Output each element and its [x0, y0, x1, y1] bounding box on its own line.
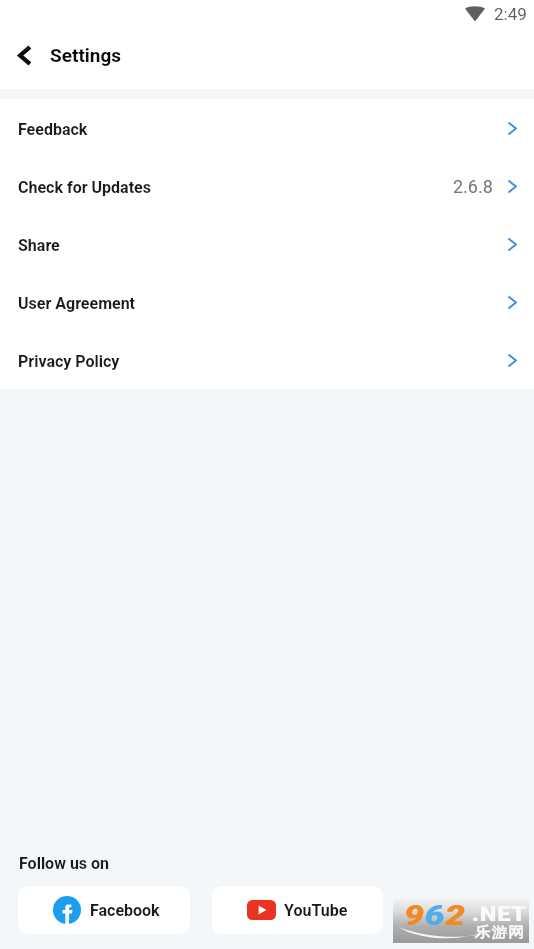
staticText: Facebook	[90, 901, 160, 920]
staticText: YouTube	[284, 901, 348, 920]
staticText: Check for Updates	[18, 178, 151, 197]
staticText: 2:49	[494, 4, 527, 24]
staticText: Feedback	[18, 120, 88, 139]
button[interactable]: User Agreement	[0, 273, 534, 331]
staticText: Privacy Policy	[18, 352, 120, 371]
staticText: Follow us on	[19, 854, 110, 873]
button[interactable]: Back	[0, 27, 50, 83]
button[interactable]: YouTube	[212, 886, 383, 934]
button[interactable]: Facebook	[18, 886, 190, 934]
staticText: Settings	[50, 44, 122, 66]
staticText: Share	[18, 236, 60, 255]
button[interactable]: Share	[0, 215, 534, 273]
staticText: User Agreement	[18, 294, 136, 313]
button[interactable]: Check for Updates	[0, 157, 534, 215]
staticText: 962	[404, 900, 466, 932]
button[interactable]: Privacy Policy	[0, 331, 534, 389]
staticText: 2.6.8	[453, 176, 493, 197]
button[interactable]: Feedback	[0, 99, 534, 157]
staticText: .NET	[472, 902, 527, 925]
staticText: 乐游网	[474, 924, 524, 942]
